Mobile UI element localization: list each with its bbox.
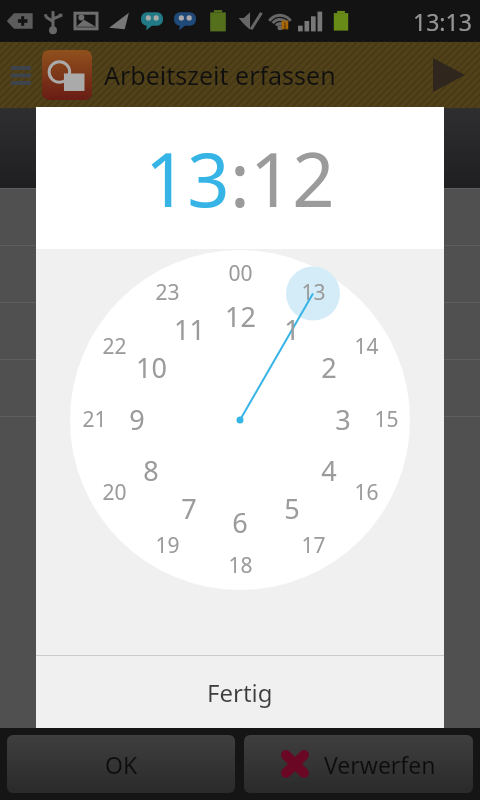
button[interactable]: 13 bbox=[301, 278, 326, 307]
button[interactable]: 12 bbox=[250, 128, 335, 229]
button[interactable]: OK bbox=[7, 735, 235, 793]
button[interactable]: Fertig bbox=[36, 656, 444, 728]
button[interactable]: Arbeitszeit bbox=[42, 50, 92, 100]
button[interactable]: 6 bbox=[232, 504, 248, 541]
button[interactable]: 2 bbox=[321, 349, 337, 386]
button[interactable]: 12 bbox=[225, 298, 256, 335]
button[interactable]: 17 bbox=[301, 531, 326, 560]
staticText: 13:13 bbox=[413, 6, 472, 37]
button[interactable] bbox=[0, 359, 480, 416]
button[interactable]: 00 bbox=[228, 259, 253, 288]
button[interactable] bbox=[0, 416, 480, 473]
button[interactable]: 7 bbox=[181, 490, 197, 527]
button[interactable]: 4 bbox=[321, 452, 337, 489]
staticText: OK bbox=[105, 749, 138, 780]
button[interactable]: 11 bbox=[174, 311, 205, 348]
staticText: : bbox=[230, 128, 250, 229]
button[interactable]: 15 bbox=[374, 405, 399, 434]
staticText: 13 bbox=[145, 128, 230, 229]
button[interactable]: Menu bbox=[0, 42, 42, 108]
button[interactable]: 13 bbox=[145, 128, 230, 229]
button[interactable]: 21 bbox=[82, 405, 107, 434]
button[interactable]: 14 bbox=[354, 332, 379, 361]
button[interactable]: 19 bbox=[155, 531, 180, 560]
button[interactable]: 16 bbox=[354, 478, 379, 507]
button[interactable]: 22 bbox=[102, 332, 127, 361]
button[interactable]: 1 bbox=[284, 311, 300, 348]
button[interactable]: 20 bbox=[102, 478, 127, 507]
button[interactable]: 5 bbox=[284, 490, 300, 527]
button[interactable] bbox=[0, 188, 480, 245]
button[interactable] bbox=[0, 302, 480, 359]
staticText: Arbeitszeit erfassen bbox=[104, 58, 336, 92]
button[interactable]: 18 bbox=[228, 551, 253, 580]
button[interactable]: 3 bbox=[335, 401, 351, 438]
staticText: Verwerfen bbox=[324, 749, 436, 780]
staticText: 12 bbox=[250, 128, 335, 229]
button[interactable]: 10 bbox=[136, 349, 167, 386]
button[interactable]: 23 bbox=[155, 278, 180, 307]
button[interactable]: 9 bbox=[129, 401, 145, 438]
button[interactable]: Start bbox=[418, 42, 480, 108]
button[interactable]: Verwerfen bbox=[244, 735, 473, 793]
button[interactable]: 8 bbox=[143, 452, 159, 489]
button[interactable] bbox=[0, 245, 480, 302]
staticText: Fertig bbox=[207, 676, 273, 709]
